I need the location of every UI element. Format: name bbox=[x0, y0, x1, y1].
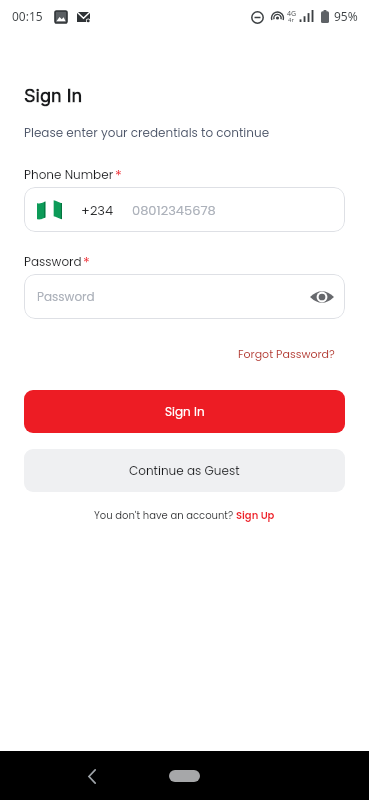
staticText: 95% bbox=[334, 8, 358, 24]
staticText: Forgot Password? bbox=[238, 346, 335, 361]
button[interactable]: Back bbox=[77, 761, 107, 791]
staticText: Continue as Guest bbox=[129, 462, 240, 479]
staticText: * bbox=[83, 253, 90, 273]
staticText: Sign In bbox=[24, 85, 83, 107]
button[interactable]: Sign In bbox=[24, 390, 345, 433]
staticText: Sign Up bbox=[236, 508, 275, 522]
staticText: Please enter your credentials to continu… bbox=[24, 124, 270, 141]
button[interactable]: Show password bbox=[308, 283, 336, 311]
button[interactable]: Forgot Password? bbox=[238, 346, 335, 361]
staticText: Password bbox=[37, 288, 95, 305]
staticText: You don't have an account? bbox=[94, 508, 236, 522]
staticText: 4G bbox=[287, 9, 297, 19]
staticText: +234 bbox=[81, 201, 114, 219]
staticText: Password bbox=[24, 253, 82, 270]
staticText: 4ᴦ bbox=[288, 16, 295, 24]
staticText: Sign In bbox=[165, 403, 205, 420]
staticText: 00:15 bbox=[12, 8, 43, 24]
button[interactable]: Home bbox=[169, 770, 200, 782]
button[interactable]: Password bbox=[24, 274, 345, 319]
button[interactable]: +234 bbox=[24, 187, 345, 232]
staticText: 08012345678 bbox=[132, 201, 216, 219]
staticText: * bbox=[115, 166, 122, 186]
button[interactable]: Continue as Guest bbox=[24, 449, 345, 492]
staticText: Phone Number bbox=[24, 166, 114, 183]
button[interactable]: Sign Up bbox=[236, 508, 275, 522]
